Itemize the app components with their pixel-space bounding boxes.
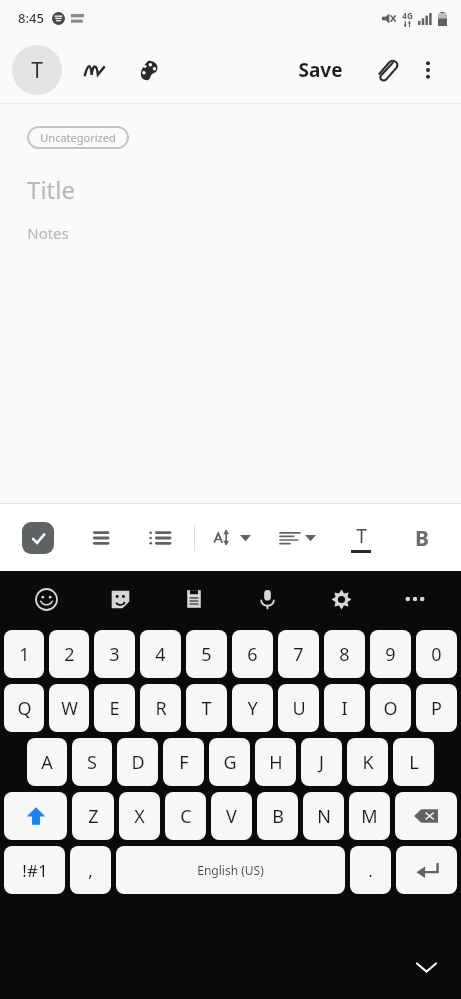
button[interactable]: O: [370, 684, 411, 732]
staticText: ,: [88, 859, 93, 882]
button[interactable]: Shift: [4, 792, 67, 840]
button[interactable]: Checklist: [22, 522, 54, 554]
button[interactable]: P: [416, 684, 457, 732]
staticText: 8:45: [18, 9, 44, 27]
button[interactable]: E: [94, 684, 135, 732]
button[interactable]: Attach: [365, 49, 407, 91]
button[interactable]: English (US): [116, 846, 345, 894]
button[interactable]: Y: [232, 684, 273, 732]
staticText: English (US): [197, 862, 264, 878]
staticText: Notes: [27, 223, 69, 243]
staticText: 3: [109, 642, 120, 667]
staticText: Save: [298, 57, 343, 83]
staticText: 8: [339, 642, 350, 667]
button[interactable]: 4: [140, 630, 181, 678]
button[interactable]: C: [165, 792, 206, 840]
staticText: T: [31, 56, 43, 85]
button[interactable]: 1: [4, 630, 44, 678]
button[interactable]: Save: [290, 51, 351, 89]
staticText: D: [131, 750, 145, 775]
staticText: 4: [155, 642, 166, 667]
staticText: F: [179, 750, 189, 775]
button[interactable]: D: [117, 738, 158, 786]
staticText: B: [415, 524, 429, 553]
button[interactable]: Bulleted list: [140, 519, 178, 557]
button[interactable]: Color palette: [126, 48, 170, 92]
button[interactable]: Z: [72, 792, 114, 840]
staticText: 2: [64, 642, 75, 667]
staticText: W: [61, 696, 78, 721]
staticText: K: [362, 750, 374, 775]
staticText: !#1: [22, 859, 48, 882]
staticText: S: [87, 750, 97, 775]
button[interactable]: 3: [94, 630, 135, 678]
button[interactable]: U: [278, 684, 319, 732]
button[interactable]: Emoji: [26, 579, 66, 619]
button[interactable]: Uncategorized: [27, 126, 129, 149]
staticText: Uncategorized: [40, 130, 116, 145]
button[interactable]: M: [349, 792, 390, 840]
button[interactable]: V: [211, 792, 252, 840]
button[interactable]: 5: [186, 630, 227, 678]
button[interactable]: Alignment: [277, 528, 319, 548]
button[interactable]: ,: [70, 846, 111, 894]
button[interactable]: W: [49, 684, 89, 732]
button[interactable]: .: [350, 846, 391, 894]
staticText: V: [226, 804, 237, 829]
staticText: 0: [431, 642, 442, 667]
staticText: 1: [19, 642, 30, 667]
button[interactable]: Stickers: [100, 579, 140, 619]
button[interactable]: More options: [407, 49, 449, 91]
staticText: X: [134, 804, 145, 829]
button[interactable]: Enter: [396, 846, 457, 894]
button[interactable]: J: [301, 738, 342, 786]
button[interactable]: Draw: [72, 48, 116, 92]
staticText: M: [361, 804, 378, 829]
button[interactable]: 2: [49, 630, 89, 678]
staticText: Z: [88, 804, 99, 829]
button[interactable]: T: [186, 684, 227, 732]
staticText: 9: [385, 642, 396, 667]
button[interactable]: Text size: [211, 527, 254, 548]
button[interactable]: S: [72, 738, 112, 786]
button[interactable]: Clipboard: [174, 579, 214, 619]
button[interactable]: N: [303, 792, 344, 840]
button[interactable]: Text mode: [12, 45, 62, 95]
button[interactable]: Q: [4, 684, 44, 732]
staticText: T: [201, 696, 212, 721]
button[interactable]: B: [257, 792, 298, 840]
button[interactable]: More: [395, 579, 435, 619]
button[interactable]: 0: [416, 630, 457, 678]
button[interactable]: Underline: [342, 519, 380, 557]
button[interactable]: R: [140, 684, 181, 732]
button[interactable]: 7: [278, 630, 319, 678]
staticText: E: [109, 696, 120, 721]
button[interactable]: !#1: [4, 846, 65, 894]
staticText: Q: [17, 696, 32, 721]
button[interactable]: Settings: [321, 579, 361, 619]
staticText: J: [319, 750, 324, 775]
staticText: G: [223, 750, 237, 775]
button[interactable]: L: [393, 738, 434, 786]
button[interactable]: Hide keyboard: [408, 949, 444, 985]
button[interactable]: A: [27, 738, 67, 786]
staticText: 6: [247, 642, 258, 667]
button[interactable]: 9: [370, 630, 411, 678]
button[interactable]: X: [119, 792, 160, 840]
button[interactable]: 8: [324, 630, 365, 678]
staticText: 5: [201, 642, 212, 667]
button[interactable]: 6: [232, 630, 273, 678]
button[interactable]: Backspace: [395, 792, 457, 840]
button[interactable]: B: [403, 519, 441, 557]
button[interactable]: Numbered list: [78, 519, 116, 557]
button[interactable]: F: [163, 738, 204, 786]
button[interactable]: H: [255, 738, 296, 786]
staticText: P: [431, 696, 442, 721]
staticText: T: [356, 523, 367, 549]
staticText: Y: [247, 696, 258, 721]
button[interactable]: K: [347, 738, 388, 786]
button[interactable]: I: [324, 684, 365, 732]
staticText: U: [292, 696, 306, 721]
button[interactable]: Voice input: [247, 579, 287, 619]
button[interactable]: G: [209, 738, 250, 786]
